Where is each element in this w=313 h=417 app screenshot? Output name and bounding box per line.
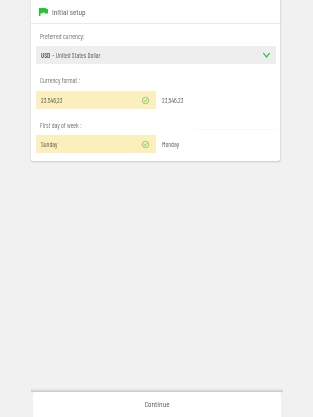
other: Initial setup bbox=[39, 8, 48, 16]
staticText: Currency format : bbox=[40, 76, 80, 84]
button[interactable]: 23,546.23 bbox=[161, 91, 276, 109]
button[interactable]: USD bbox=[36, 46, 276, 64]
staticText: 23.546,23 bbox=[41, 96, 63, 104]
staticText: USD bbox=[41, 51, 51, 59]
button[interactable]: Sunday bbox=[36, 135, 156, 153]
staticText: Continue bbox=[144, 399, 170, 409]
other: Open currency list bbox=[263, 51, 270, 59]
staticText: - United States Dollar bbox=[51, 51, 101, 59]
staticText: Sunday bbox=[41, 140, 58, 148]
staticText: Preferred currency: bbox=[40, 32, 85, 40]
staticText: 23,546.23 bbox=[162, 96, 184, 104]
button[interactable]: 23.546,23 bbox=[36, 91, 156, 109]
button[interactable]: Monday bbox=[161, 135, 276, 153]
staticText: Initial setup bbox=[52, 7, 86, 17]
button[interactable]: Initial setup bbox=[31, 5, 280, 19]
button[interactable]: Continue bbox=[33, 392, 281, 417]
staticText: First day of week : bbox=[40, 121, 82, 129]
staticText: Monday bbox=[162, 140, 180, 148]
